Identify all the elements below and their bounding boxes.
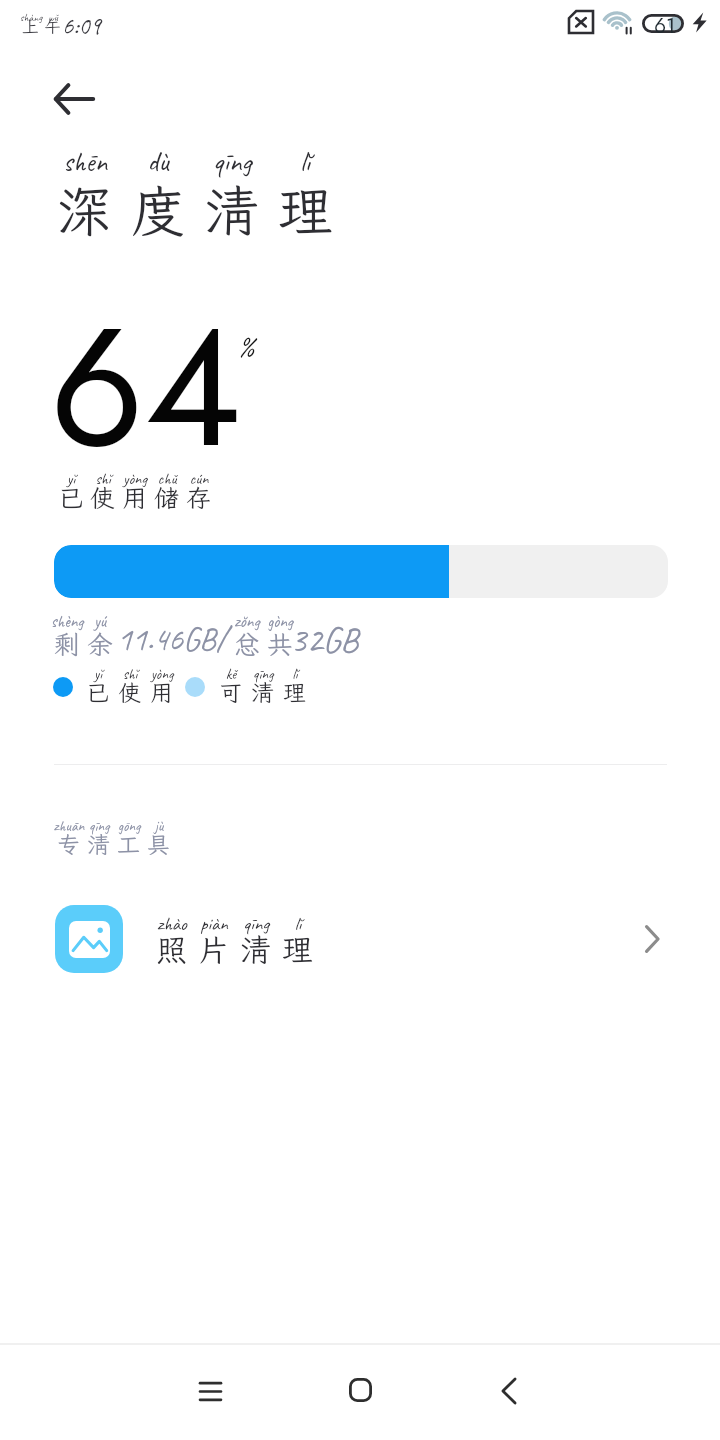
staticText: 61 (654, 11, 676, 41)
staticText: yĭ (38, 665, 158, 684)
staticText: 剩 (54, 627, 81, 661)
button[interactable] (0, 885, 720, 991)
staticText: shēn (25, 144, 145, 179)
button[interactable]: Home (324, 1354, 396, 1426)
staticText: 深 (57, 174, 113, 246)
staticText: 已 (58, 481, 84, 514)
staticText: 6:09 (62, 10, 101, 42)
staticText: 片 (198, 929, 229, 970)
staticText: 使 (118, 677, 141, 707)
staticText: 度 (131, 174, 187, 246)
staticText: yòng (75, 469, 195, 489)
staticText: 用 (122, 481, 148, 514)
staticText: 64 (49, 267, 242, 507)
staticText: shàng (0, 10, 91, 24)
staticText: yòng (102, 665, 222, 684)
staticText: gòng (220, 611, 340, 632)
staticText: qīng (172, 144, 292, 179)
staticText: 11.46GB/ (117, 618, 227, 660)
staticText: 存 (186, 481, 212, 514)
staticText: zŏng (187, 611, 307, 632)
staticText: jù (99, 817, 219, 836)
staticText: 余 (87, 627, 114, 661)
staticText: 已 (86, 677, 109, 707)
staticText: 上 (22, 15, 39, 37)
staticText: 清 (87, 829, 110, 859)
staticText: 总 (234, 627, 261, 661)
staticText: lĭ (235, 665, 355, 684)
staticText: gōng (69, 817, 189, 836)
button[interactable]: Back (473, 1355, 545, 1427)
staticText: 午 (44, 15, 61, 37)
staticText: chǔ (107, 469, 227, 489)
staticText: shĭ (70, 665, 190, 684)
staticText: 工 (117, 829, 140, 859)
staticText: 理 (282, 929, 313, 970)
staticText: kě (171, 665, 291, 684)
staticText: 照 (156, 929, 187, 970)
staticText: lĭ (245, 144, 365, 179)
staticText: zhào (112, 912, 232, 936)
staticText: dù (98, 144, 218, 179)
button[interactable]: Recent apps (174, 1355, 246, 1427)
staticText: qīng (39, 817, 159, 836)
staticText: 理 (278, 174, 334, 246)
staticText: wǔ (0, 10, 113, 24)
staticText: % (238, 328, 255, 363)
staticText: 清 (240, 929, 271, 970)
staticText: 可 (219, 677, 242, 707)
button[interactable]: Back (42, 67, 106, 131)
staticText: shĭ (43, 469, 163, 489)
staticText: 专 (57, 829, 80, 859)
staticText: 共 (267, 627, 294, 661)
staticText: 用 (150, 677, 173, 707)
staticText: qīng (196, 912, 316, 936)
staticText: yĭ (11, 469, 131, 489)
staticText: piàn (154, 912, 274, 936)
staticText: 使 (90, 481, 116, 514)
staticText: zhuān (9, 817, 129, 836)
staticText: 储 (154, 481, 180, 514)
staticText: lĭ (238, 912, 358, 936)
staticText: 理 (283, 677, 306, 707)
staticText: 具 (147, 829, 170, 859)
staticText: qīng (203, 665, 323, 684)
staticText: 清 (204, 174, 260, 246)
staticText: 32GB (290, 617, 359, 662)
staticText: cún (139, 469, 259, 489)
staticText: yú (40, 611, 160, 632)
staticText: 清 (251, 677, 274, 707)
staticText: shèng (7, 611, 127, 632)
